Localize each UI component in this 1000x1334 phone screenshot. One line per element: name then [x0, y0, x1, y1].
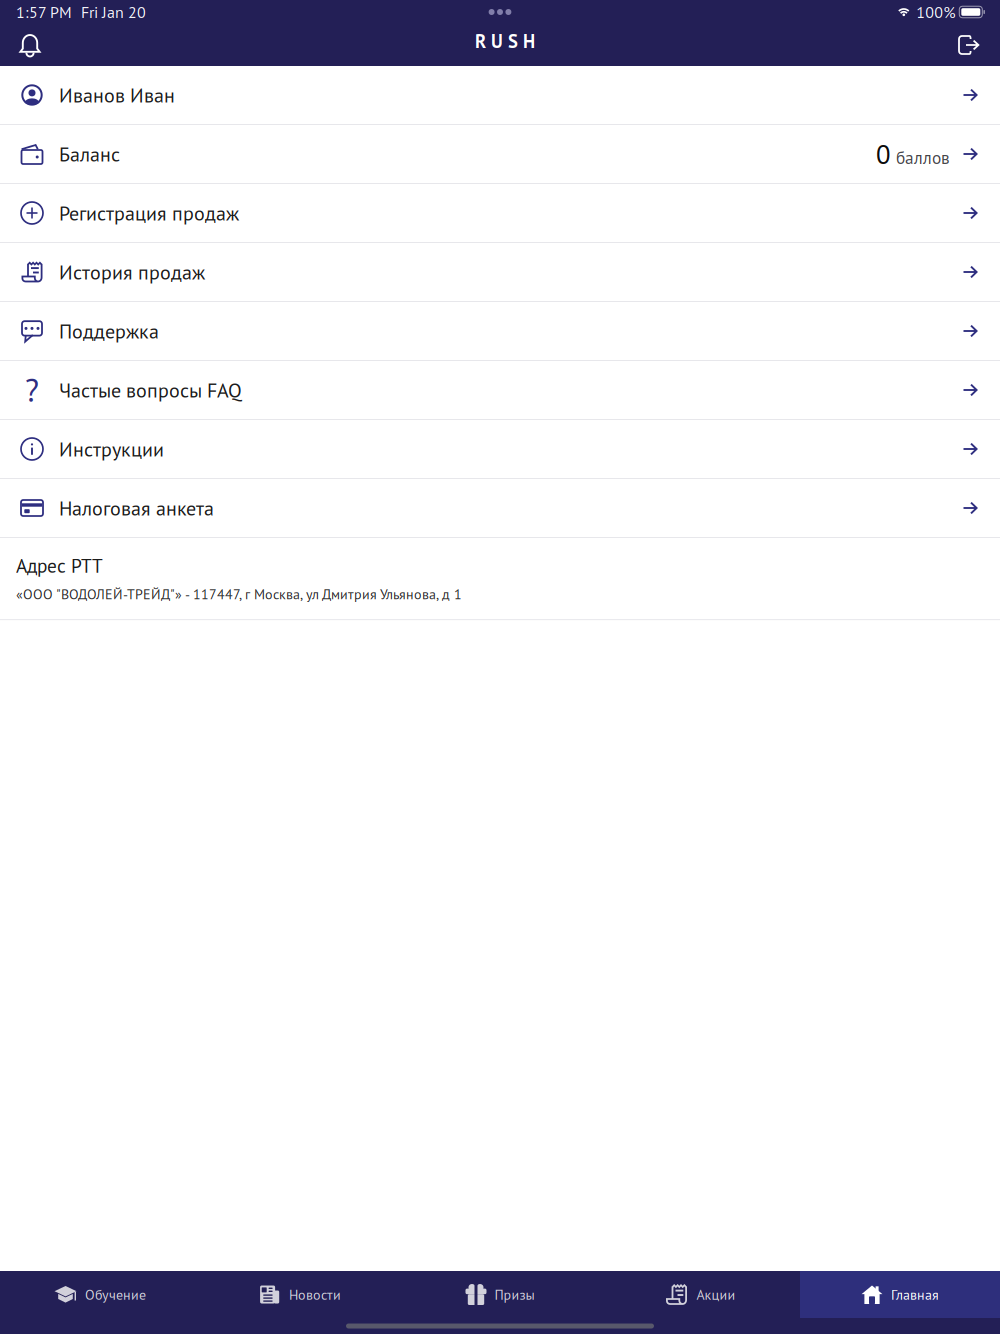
button[interactable]: ? — [0, 361, 1000, 420]
staticText: R U S H — [475, 29, 535, 53]
button[interactable]: Главная — [800, 1271, 1000, 1318]
button[interactable]: Notifications — [10, 26, 50, 64]
staticText: Поддержка — [59, 318, 159, 344]
button[interactable]: Баланс — [0, 125, 1000, 184]
button[interactable]: Налоговая анкета — [0, 479, 1000, 538]
button[interactable]: Log out — [949, 26, 989, 64]
button[interactable]: Призы — [400, 1271, 600, 1318]
button[interactable]: История продаж — [0, 243, 1000, 302]
staticText: Иванов Иван — [59, 82, 175, 108]
staticText: Инструкции — [59, 436, 164, 462]
staticText: Акции — [696, 1285, 735, 1303]
staticText: Fri Jan 20 — [81, 2, 146, 22]
staticText: 0 — [876, 137, 891, 171]
button[interactable]: Иванов Иван — [0, 66, 1000, 125]
staticText: 100% — [916, 2, 955, 22]
button[interactable]: Инструкции — [0, 420, 1000, 479]
staticText: Главная — [891, 1285, 939, 1303]
button[interactable]: Акции — [600, 1271, 800, 1318]
staticText: Адрес РТТ — [16, 553, 103, 578]
staticText: Баланс — [59, 141, 120, 167]
staticText: Регистрация продаж — [59, 200, 239, 226]
button[interactable]: Обучение — [0, 1271, 200, 1318]
staticText: Новости — [289, 1285, 341, 1303]
staticText: Налоговая анкета — [59, 495, 214, 521]
staticText: Обучение — [85, 1285, 146, 1303]
staticText: баллов — [896, 146, 950, 169]
staticText: «ООО "ВОДОЛЕЙ-ТРЕЙД"» - 117447, г Москва… — [16, 585, 462, 603]
button[interactable]: Регистрация продаж — [0, 184, 1000, 243]
button[interactable]: Новости — [200, 1271, 400, 1318]
staticText: Частые вопросы FAQ — [59, 377, 242, 403]
staticText: История продаж — [59, 259, 205, 285]
staticText: 1:57 PM — [16, 2, 72, 22]
button[interactable]: Поддержка — [0, 302, 1000, 361]
staticText: ? — [25, 369, 39, 411]
staticText: Призы — [494, 1285, 534, 1303]
